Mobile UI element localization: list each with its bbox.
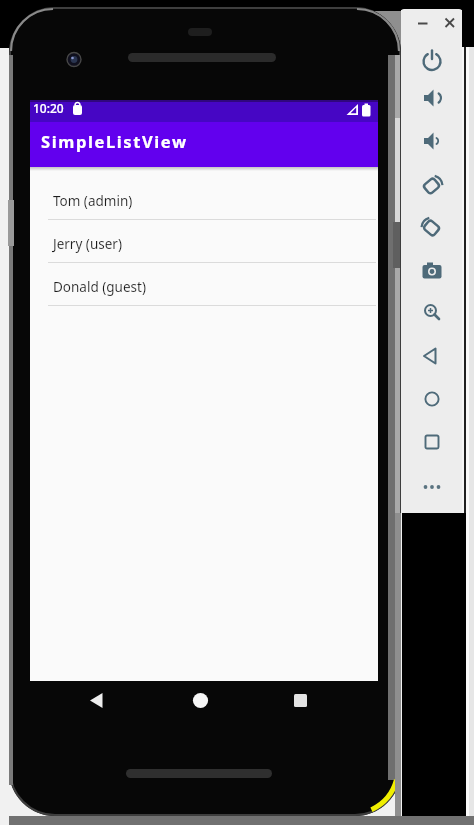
- button[interactable]: Donald (guest): [30, 263, 378, 306]
- button[interactable]: [419, 429, 445, 455]
- button[interactable]: [419, 128, 445, 154]
- button[interactable]: Jerry (user): [30, 220, 378, 263]
- button[interactable]: [419, 258, 445, 284]
- staticText: 10:20: [33, 100, 64, 116]
- button[interactable]: [441, 14, 459, 32]
- staticText: Jerry (user): [53, 235, 122, 253]
- staticText: Donald (guest): [53, 278, 146, 296]
- button[interactable]: [419, 48, 445, 74]
- button[interactable]: [419, 85, 445, 111]
- button[interactable]: [293, 693, 308, 708]
- button[interactable]: Tom (admin): [30, 177, 378, 220]
- staticText: Tom (admin): [53, 192, 133, 210]
- button[interactable]: [419, 172, 445, 198]
- button[interactable]: [88, 692, 106, 710]
- button[interactable]: [419, 474, 445, 500]
- button[interactable]: [419, 299, 445, 325]
- button[interactable]: [419, 386, 445, 412]
- button[interactable]: [192, 692, 209, 709]
- button[interactable]: [419, 343, 445, 369]
- staticText: SimpleListView: [41, 130, 188, 152]
- button[interactable]: [419, 214, 445, 240]
- button[interactable]: [414, 14, 432, 32]
